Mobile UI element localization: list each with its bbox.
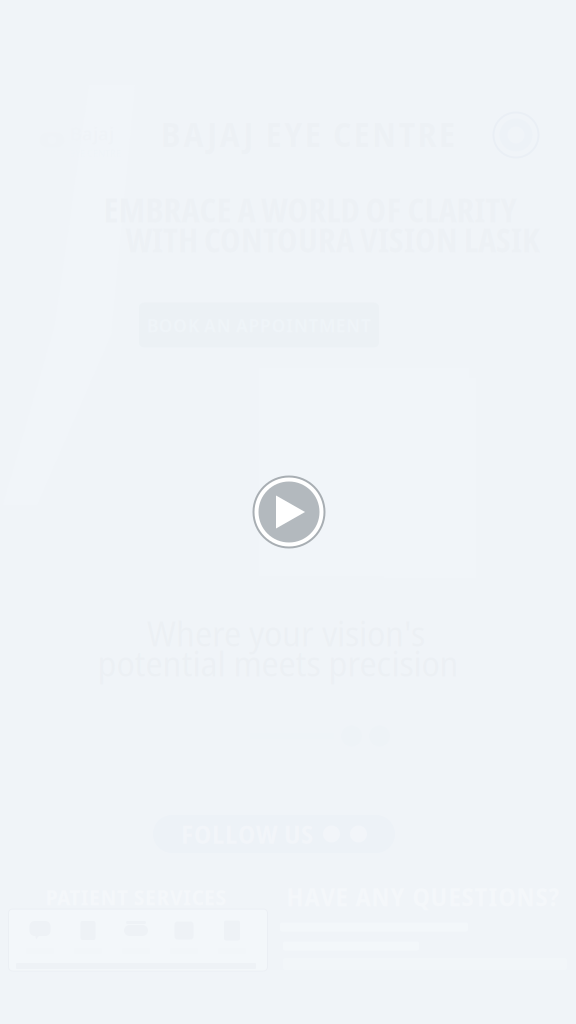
button[interactable]: Play video: [251, 474, 327, 550]
